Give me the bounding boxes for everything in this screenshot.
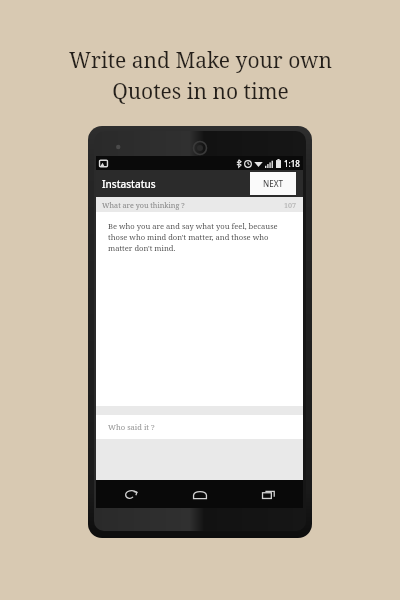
staticText: Write and Make your own [69, 46, 332, 75]
staticText: 1:18 [284, 158, 300, 169]
staticText: Who said it ? [108, 422, 155, 432]
staticText: 107 [284, 200, 297, 210]
button[interactable]: Recent apps [234, 480, 303, 508]
button[interactable]: Who said it ? [96, 415, 303, 439]
staticText: Instastatus [102, 177, 156, 191]
button[interactable]: Be who you are and say what you feel, be… [96, 212, 303, 406]
button[interactable]: Back [96, 480, 165, 508]
staticText: What are you thinking ? [102, 200, 185, 210]
staticText: NEXT [263, 178, 284, 189]
staticText: Be who you are and say what you feel, be… [108, 221, 293, 253]
staticText: Quotes in no time [112, 77, 289, 106]
button[interactable]: Home [165, 480, 234, 508]
button[interactable]: NEXT [250, 172, 296, 195]
